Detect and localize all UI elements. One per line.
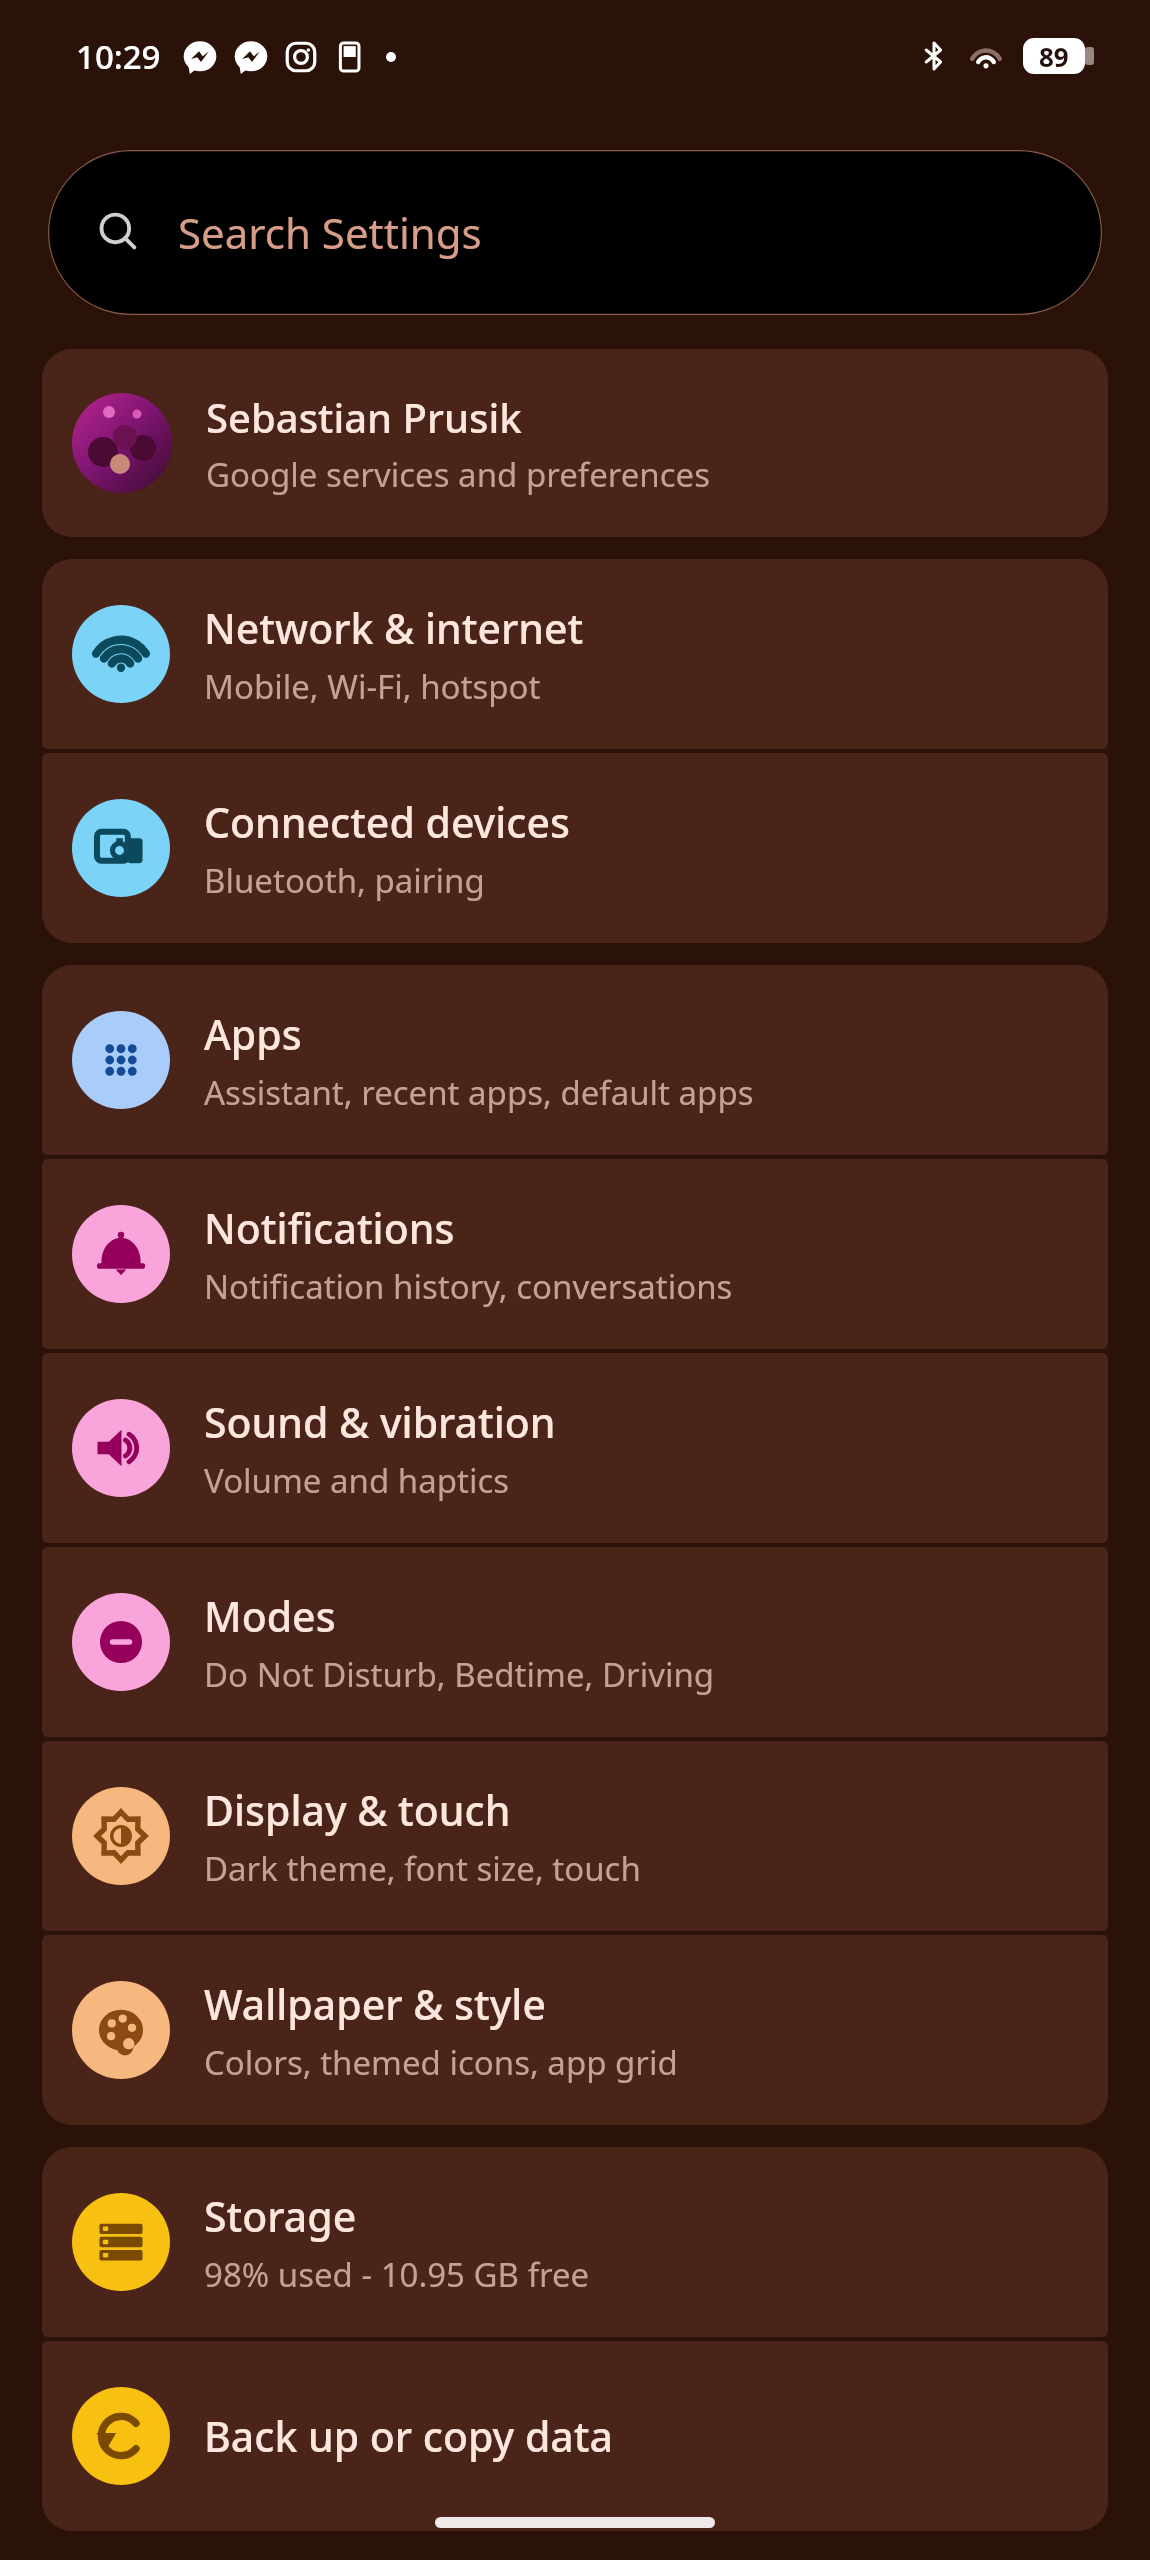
staticText: Sound & vibration <box>204 1394 556 1450</box>
button[interactable]: Storage <box>42 2147 1108 2337</box>
button[interactable]: Sebastian Prusik <box>42 349 1108 537</box>
button[interactable]: Modes <box>42 1547 1108 1737</box>
staticText: Google services and preferences <box>206 452 710 497</box>
staticText: Network & internet <box>204 600 584 656</box>
button[interactable]: Apps <box>42 965 1108 1155</box>
staticText: Dark theme, font size, touch <box>204 1846 641 1891</box>
button[interactable]: Back up or copy data <box>42 2341 1108 2531</box>
staticText: Back up or copy data <box>204 2408 613 2464</box>
staticText: Bluetooth, pairing <box>204 858 485 903</box>
button[interactable]: Display & touch <box>42 1741 1108 1931</box>
staticText: Do Not Disturb, Bedtime, Driving <box>204 1652 715 1697</box>
staticText: Wallpaper & style <box>204 1976 546 2032</box>
staticText: Mobile, Wi-Fi, hotspot <box>204 664 541 709</box>
staticText: Connected devices <box>204 794 570 850</box>
staticText: Assistant, recent apps, default apps <box>204 1070 754 1115</box>
staticText: 89 <box>1039 39 1069 74</box>
staticText: Colors, themed icons, app grid <box>204 2040 678 2085</box>
button[interactable]: Sound & vibration <box>42 1353 1108 1543</box>
staticText: Notifications <box>204 1200 455 1256</box>
staticText: Notification history, conversations <box>204 1264 733 1309</box>
staticText: Storage <box>204 2188 357 2244</box>
staticText: Modes <box>204 1588 336 1644</box>
staticText: 98% used - 10.95 GB free <box>204 2252 590 2297</box>
staticText: Apps <box>204 1006 302 1062</box>
button[interactable]: Search Settings <box>48 150 1102 315</box>
staticText: Display & touch <box>204 1782 511 1838</box>
button[interactable]: Connected devices <box>42 753 1108 943</box>
staticText: Volume and haptics <box>204 1458 510 1503</box>
staticText: Search Settings <box>178 204 482 261</box>
button[interactable]: Network & internet <box>42 559 1108 749</box>
button[interactable]: Wallpaper & style <box>42 1935 1108 2125</box>
button[interactable]: Notifications <box>42 1159 1108 1349</box>
staticText: 10:29 <box>76 34 161 79</box>
staticText: Sebastian Prusik <box>206 390 522 444</box>
